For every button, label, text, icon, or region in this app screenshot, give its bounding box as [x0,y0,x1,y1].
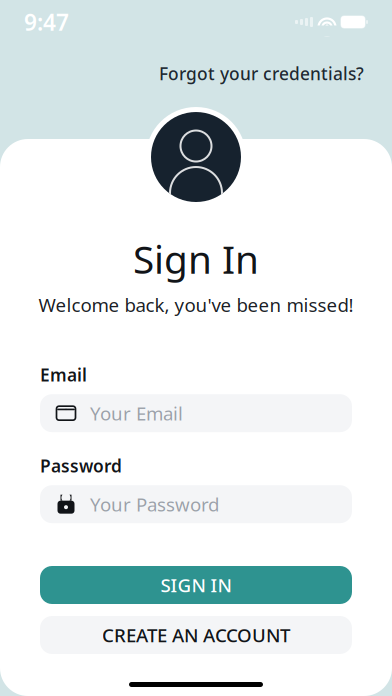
staticText: Email [40,363,87,386]
staticText: CREATE AN ACCOUNT [102,623,290,647]
button[interactable]: Forgot your credentials? [155,56,368,91]
staticText: Welcome back, you've been missed! [38,292,353,317]
staticText: SIGN IN [160,573,231,597]
button[interactable]: SIGN IN [40,566,352,604]
staticText: Your Email [90,401,183,426]
staticText: Password [40,454,122,477]
staticText: Sign In [133,233,259,284]
staticText: Forgot your credentials? [159,62,364,85]
button[interactable]: CREATE AN ACCOUNT [40,616,352,654]
staticText: 9:47 [24,7,69,37]
staticText: Your Password [90,492,219,517]
button[interactable]: Your Password [40,485,352,523]
button[interactable]: Your Email [40,394,352,432]
